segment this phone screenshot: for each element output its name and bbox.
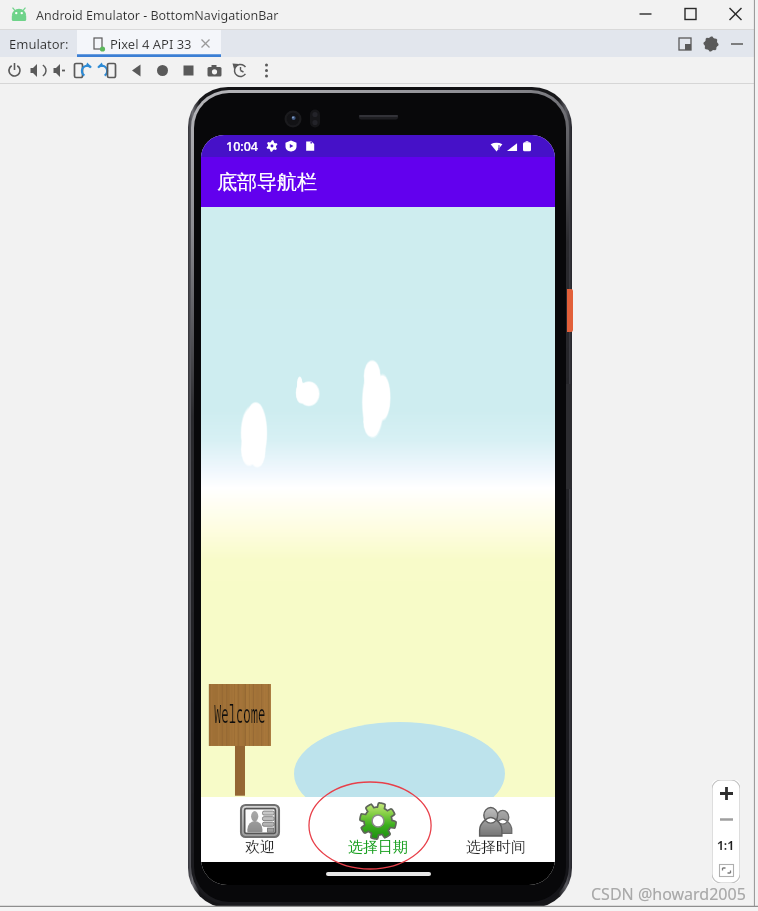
button[interactable]: Settings <box>698 31 724 57</box>
button[interactable]: Minimize <box>623 0 668 29</box>
staticText: Emulator: <box>9 35 69 53</box>
button[interactable]: Close <box>713 0 758 29</box>
staticText: Welcome <box>214 695 266 730</box>
staticText: CSDN @howard2005 <box>591 883 746 905</box>
button[interactable]: Power <box>3 59 26 82</box>
button[interactable]: Close tab <box>200 38 211 49</box>
button[interactable]: Home <box>151 59 174 82</box>
button[interactable]: Rotate left <box>72 59 95 82</box>
button[interactable]: Overview <box>177 59 200 82</box>
button[interactable]: 选择时间 <box>437 797 555 862</box>
button[interactable]: Zoom out <box>712 807 740 832</box>
button[interactable]: Minimize panel <box>724 31 750 57</box>
button[interactable]: More <box>255 59 278 82</box>
button[interactable]: Power button <box>567 289 573 332</box>
staticText: Pixel 4 API 33 <box>110 35 192 53</box>
button[interactable]: Back <box>125 59 148 82</box>
staticText: Android Emulator - BottomNavigationBar <box>36 7 279 24</box>
staticText: 10:04 <box>226 138 259 155</box>
staticText: 底部导航栏 <box>217 170 317 195</box>
staticText: 欢迎 <box>245 838 275 857</box>
button[interactable]: Zoom in <box>712 780 740 807</box>
button[interactable]: Pixel 4 API 33 <box>77 30 221 57</box>
button[interactable]: 1:1 <box>712 832 740 857</box>
button[interactable]: 欢迎 <box>201 797 319 862</box>
button[interactable]: Fit to screen <box>712 857 740 883</box>
staticText: 选择日期 <box>348 838 408 857</box>
button[interactable]: Maximize <box>668 0 713 29</box>
staticText: 选择时间 <box>466 838 526 857</box>
button[interactable]: Volume down <box>49 59 72 82</box>
button[interactable]: History <box>229 59 252 82</box>
button[interactable]: Rotate right <box>95 59 118 82</box>
button[interactable]: Volume up <box>26 59 49 82</box>
button[interactable]: 选择日期 <box>319 797 437 862</box>
button[interactable]: Split window <box>672 31 698 57</box>
button[interactable]: Screenshot <box>203 59 226 82</box>
staticText: 1:1 <box>717 837 735 853</box>
